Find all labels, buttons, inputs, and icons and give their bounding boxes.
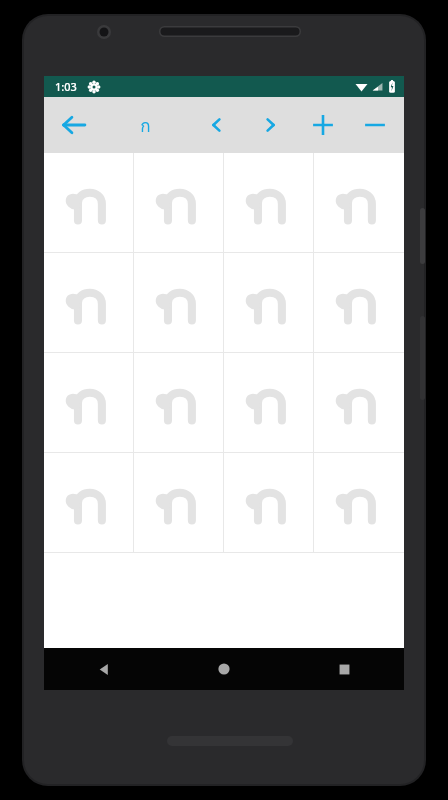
button[interactable]: Back — [52, 103, 96, 147]
button[interactable] — [314, 453, 404, 552]
button[interactable]: Previous — [195, 103, 239, 147]
button[interactable] — [44, 253, 134, 352]
button[interactable]: Increase size — [301, 103, 345, 147]
button[interactable] — [314, 353, 404, 452]
button[interactable]: Home — [164, 648, 284, 690]
button[interactable] — [134, 253, 224, 352]
button[interactable] — [134, 153, 224, 252]
button[interactable] — [44, 453, 134, 552]
button[interactable] — [224, 353, 314, 452]
button[interactable] — [224, 253, 314, 352]
button[interactable] — [44, 353, 134, 452]
button[interactable] — [44, 153, 134, 252]
button[interactable]: Next — [248, 103, 292, 147]
button[interactable]: Decrease size — [353, 103, 397, 147]
staticText: 1:03 — [55, 79, 77, 94]
staticText: ก — [140, 112, 151, 139]
button[interactable] — [134, 353, 224, 452]
button[interactable]: ก — [123, 103, 167, 147]
button[interactable]: Back — [44, 648, 164, 690]
button[interactable] — [224, 453, 314, 552]
button[interactable] — [134, 453, 224, 552]
button[interactable] — [224, 153, 314, 252]
button[interactable] — [314, 153, 404, 252]
button[interactable] — [314, 253, 404, 352]
button[interactable]: Recents — [284, 648, 404, 690]
